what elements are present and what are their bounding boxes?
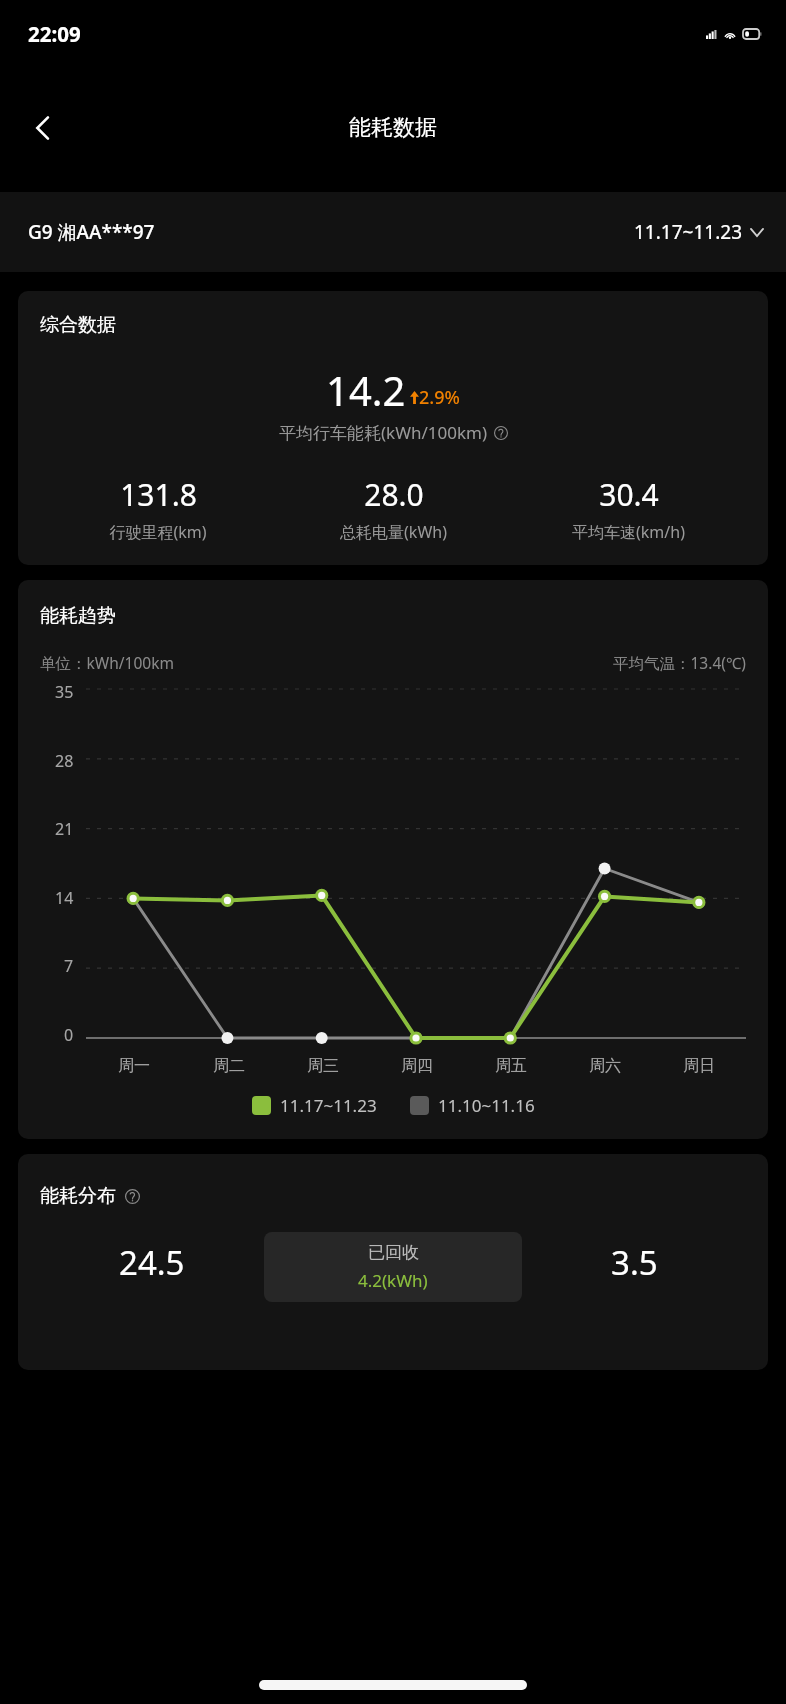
staticText: 周二 (213, 1056, 245, 1076)
staticText: 35 (55, 681, 74, 703)
staticText: 24.5 (119, 1240, 185, 1285)
staticText: 28 (55, 750, 74, 772)
staticText: 3.5 (611, 1240, 658, 1285)
staticText: 14 (55, 887, 74, 909)
button[interactable]: 11.10~11.16 (410, 1094, 535, 1117)
staticText: 0 (64, 1024, 74, 1046)
staticText: 周四 (401, 1056, 433, 1076)
staticText: 11.17~11.23 (280, 1094, 377, 1117)
staticText: 单位：kWh/100km (40, 652, 174, 673)
staticText: 总耗电量(kWh) (340, 521, 447, 543)
staticText: 21 (55, 818, 74, 840)
staticText: 周一 (118, 1056, 150, 1076)
staticText: 11.10~11.16 (438, 1094, 535, 1117)
staticText: 平均行车能耗(kWh/100km) (279, 421, 488, 444)
staticText: 11.17~11.23 (634, 219, 742, 245)
staticText: 能耗数据 (349, 114, 437, 142)
staticText: 平均车速(km/h) (572, 521, 685, 543)
button[interactable]: 11.17~11.23 (634, 219, 764, 245)
staticText: 综合数据 (40, 313, 116, 337)
staticText: G9 湘AA***97 (28, 219, 155, 245)
staticText: 131.8 (120, 474, 197, 515)
staticText: 能耗趋势 (40, 604, 116, 628)
staticText: 周日 (683, 1056, 715, 1076)
staticText: 7 (64, 955, 74, 977)
staticText: 周六 (589, 1056, 621, 1076)
staticText: 28.0 (364, 474, 424, 515)
staticText: 30.4 (599, 474, 659, 515)
staticText: 行驶里程(km) (109, 521, 207, 543)
staticText: 周五 (495, 1056, 527, 1076)
staticText: 14.2 (326, 363, 406, 417)
button[interactable]: 11.17~11.23 (252, 1094, 377, 1117)
staticText: 22:09 (28, 20, 81, 48)
staticText: 已回收 (368, 1242, 419, 1263)
button[interactable]: Back (14, 100, 70, 156)
staticText: 4.2(kWh) (358, 1269, 428, 1292)
staticText: 周三 (307, 1056, 339, 1076)
staticText: 2.9% (419, 385, 460, 410)
staticText: 平均气温：13.4(℃) (613, 652, 746, 673)
staticText: 能耗分布 (40, 1184, 116, 1208)
